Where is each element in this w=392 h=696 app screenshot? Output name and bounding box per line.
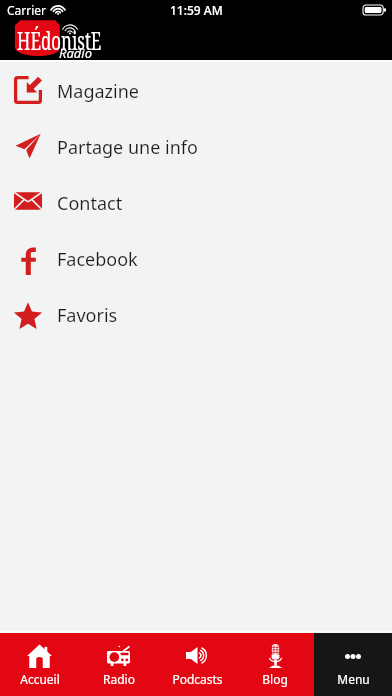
button[interactable]: Partage une info: [0, 119, 392, 175]
staticText: Facebook: [57, 247, 138, 272]
staticText: 11:59 AM: [170, 2, 223, 18]
staticText: Podcasts: [172, 671, 223, 687]
button[interactable]: Podcasts: [158, 633, 236, 696]
staticText: Radio: [103, 671, 135, 687]
button[interactable]: Radio: [79, 633, 158, 696]
button[interactable]: Menu: [314, 633, 392, 696]
staticText: Contact: [57, 191, 123, 216]
staticText: Favoris: [57, 303, 118, 328]
staticText: Radio: [59, 44, 93, 62]
staticText: HÉdonistE: [17, 23, 101, 57]
button[interactable]: Contact: [0, 175, 392, 231]
button[interactable]: Blog: [236, 633, 314, 696]
button[interactable]: Facebook: [0, 231, 392, 287]
staticText: Carrier: [7, 2, 47, 18]
staticText: Accueil: [20, 671, 60, 687]
staticText: Blog: [262, 671, 288, 687]
staticText: Menu: [337, 671, 370, 687]
button[interactable]: Accueil: [0, 633, 79, 696]
button[interactable]: Magazine: [0, 63, 392, 119]
staticText: Magazine: [57, 79, 139, 104]
button[interactable]: Favoris: [0, 287, 392, 343]
staticText: Partage une info: [57, 135, 198, 160]
